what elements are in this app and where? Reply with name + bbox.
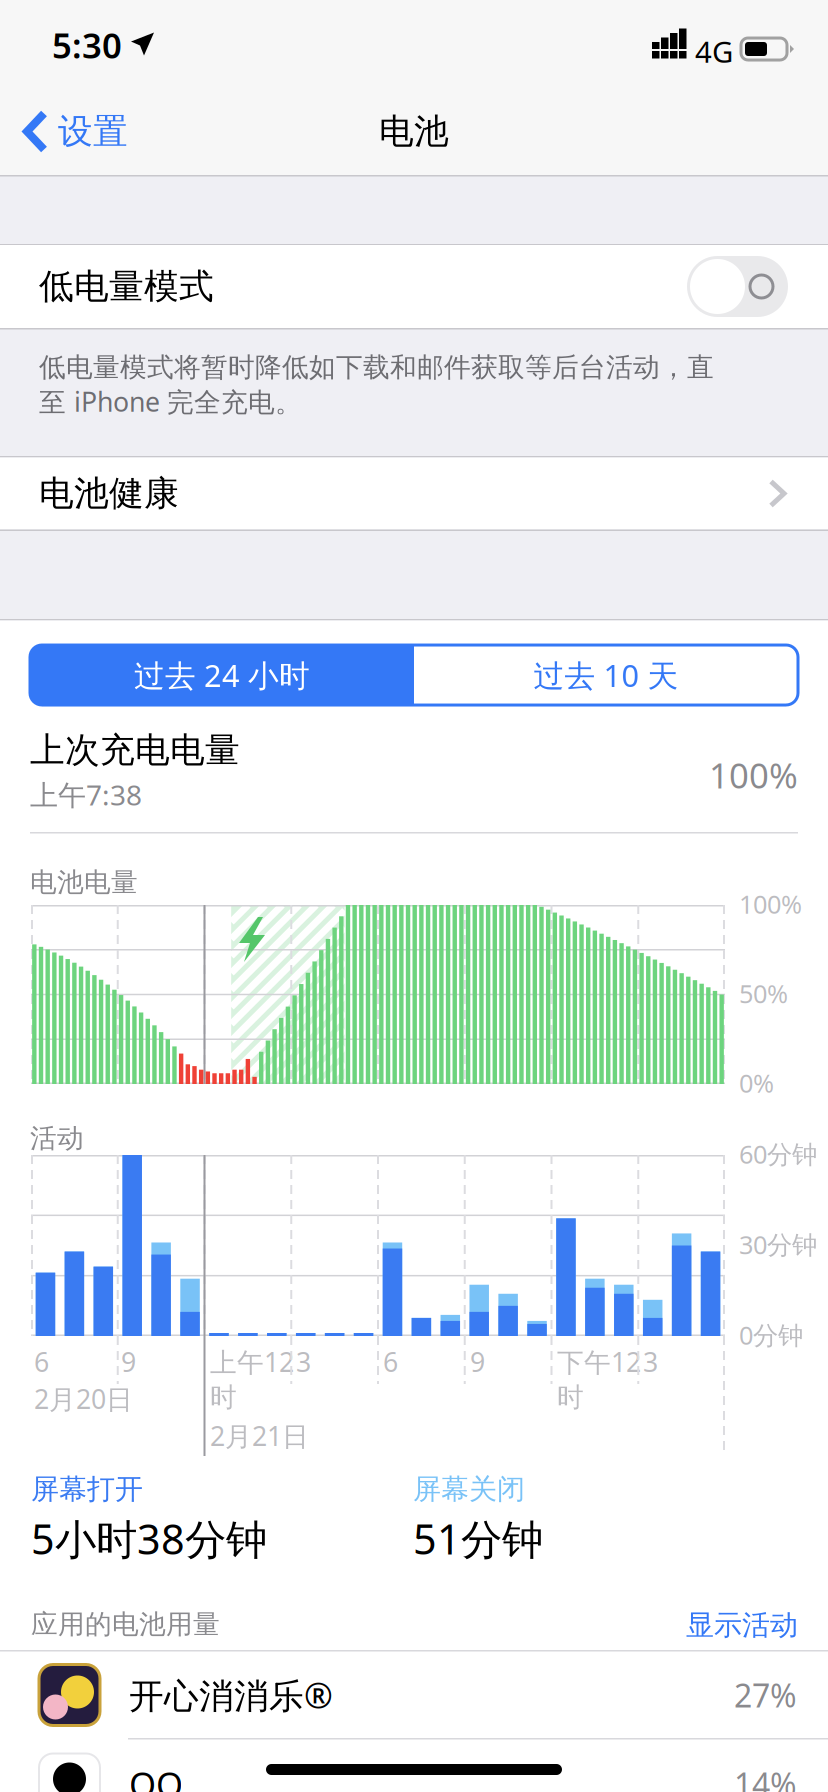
button[interactable]: 过去 24 小时 <box>30 645 414 705</box>
staticText: 4G <box>695 32 733 71</box>
staticText: 51分钟 <box>413 1511 543 1566</box>
staticText: 0% <box>739 1066 774 1100</box>
button[interactable]: 显示活动 <box>0 1608 798 1642</box>
staticText: 下午12 <box>557 1344 641 1379</box>
staticText: 过去 10 天 <box>533 655 678 695</box>
staticText: 上午12 <box>210 1344 294 1379</box>
staticText: QQ <box>129 1761 183 1792</box>
staticText: 显示活动 <box>686 1608 798 1642</box>
staticText: 3 <box>296 1344 311 1379</box>
staticText: 屏幕关闭 <box>413 1472 525 1506</box>
staticText: 应用的电池用量 <box>31 1608 220 1641</box>
staticText: 时 <box>210 1381 237 1414</box>
button[interactable]: 低电量模式 <box>0 245 828 328</box>
staticText: 9 <box>470 1344 485 1379</box>
staticText: 3 <box>643 1344 658 1379</box>
staticText: 100% <box>739 887 802 921</box>
button[interactable]: QQ <box>0 1740 828 1792</box>
staticText: 6 <box>383 1344 398 1379</box>
staticText: 设置 <box>58 110 128 153</box>
button[interactable]: 过去 10 天 <box>414 645 798 705</box>
button[interactable]: 开心消消乐® <box>0 1651 828 1739</box>
staticText: 6 <box>34 1344 49 1379</box>
staticText: 0分钟 <box>739 1318 803 1352</box>
staticText: 27% <box>734 1674 797 1716</box>
staticText: 50% <box>739 976 788 1010</box>
staticText: 5小时38分钟 <box>31 1511 267 1566</box>
staticText: 电池 <box>379 110 449 153</box>
staticText: 开心消消乐® <box>129 1672 333 1718</box>
staticText: 屏幕打开 <box>31 1472 143 1506</box>
staticText: 活动 <box>30 1122 84 1155</box>
staticText: 电池健康 <box>39 472 179 515</box>
staticText: 上午7:38 <box>30 776 142 813</box>
staticText: 30分钟 <box>739 1227 817 1261</box>
staticText: 100% <box>709 752 798 798</box>
staticText: 60分钟 <box>739 1137 817 1171</box>
staticText: 电池电量 <box>30 866 138 899</box>
staticText: 低电量模式 <box>39 265 214 308</box>
staticText: 时 <box>557 1381 584 1414</box>
staticText: 14% <box>734 1763 797 1792</box>
staticText: 上次充电电量 <box>30 729 240 772</box>
staticText: 9 <box>121 1344 136 1379</box>
staticText: 2月21日 <box>210 1418 309 1453</box>
button[interactable]: 电池健康 <box>0 457 828 529</box>
staticText: 5:30 <box>52 22 122 68</box>
staticText: 过去 24 小时 <box>134 655 310 695</box>
staticText: 2月20日 <box>34 1381 133 1416</box>
button[interactable]: 设置 <box>0 88 146 175</box>
staticText: 低电量模式将暂时降低如下载和邮件获取等后台活动，直至 iPhone 完全充电。 <box>39 351 714 419</box>
